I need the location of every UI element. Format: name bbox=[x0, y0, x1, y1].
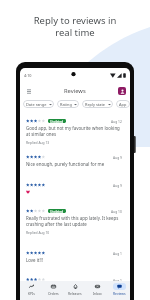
button[interactable]: Open navigation menu bbox=[24, 86, 33, 95]
staticText: Aug 1 bbox=[113, 251, 122, 255]
staticText: Date range bbox=[26, 102, 47, 107]
button[interactable]: Aug 9 bbox=[20, 149, 130, 177]
staticText: Reviews bbox=[64, 87, 86, 95]
staticText: Love it!!! bbox=[26, 257, 43, 263]
button[interactable]: Reviews bbox=[108, 283, 130, 295]
button[interactable]: Reply state bbox=[82, 100, 113, 108]
staticText: Replied Aug 10 bbox=[26, 230, 50, 234]
button[interactable]: KPIs bbox=[20, 283, 42, 295]
button[interactable]: Aug 1 bbox=[20, 245, 130, 272]
staticText: Aug 12 bbox=[111, 119, 122, 123]
staticText: 4:10 bbox=[24, 73, 32, 78]
staticText: Updated bbox=[50, 209, 64, 213]
staticText: Rating bbox=[60, 102, 72, 107]
button[interactable]: Aug 1 bbox=[20, 272, 130, 281]
staticText: Releases bbox=[68, 291, 82, 295]
staticText: Inbox bbox=[93, 291, 102, 295]
staticText: Nice enough, purely functional for me bbox=[26, 161, 105, 167]
staticText: Reply state bbox=[85, 102, 106, 107]
staticText: Really frustrated with this app lately. … bbox=[26, 215, 122, 228]
button[interactable]: Inbox bbox=[86, 283, 108, 295]
button[interactable]: Updated bbox=[20, 109, 130, 149]
staticText: Aug 9 bbox=[113, 155, 122, 159]
staticText: Aug 9 bbox=[113, 183, 122, 187]
button[interactable]: Account bbox=[118, 87, 126, 95]
staticText: Replied Aug 13 bbox=[26, 140, 50, 144]
staticText: Orders bbox=[48, 291, 59, 295]
button[interactable]: Updated bbox=[20, 203, 130, 245]
button[interactable]: Aug 9 bbox=[20, 177, 130, 203]
staticText: KPIs bbox=[28, 291, 35, 295]
button[interactable]: App bbox=[116, 100, 130, 108]
staticText: Reply to reviews in real time bbox=[0, 14, 150, 39]
button[interactable]: Releases bbox=[64, 283, 86, 295]
staticText: Aug 1 bbox=[113, 278, 122, 281]
staticText: Reviews bbox=[113, 291, 126, 295]
button[interactable]: Date range bbox=[23, 100, 54, 108]
staticText: Good app, but not my favourite when look… bbox=[26, 125, 122, 138]
staticText: Updated bbox=[50, 119, 64, 123]
staticText: App bbox=[119, 102, 127, 107]
button[interactable]: Rating bbox=[57, 100, 79, 108]
staticText: Aug 10 bbox=[111, 209, 122, 213]
button[interactable]: Orders bbox=[42, 283, 64, 295]
